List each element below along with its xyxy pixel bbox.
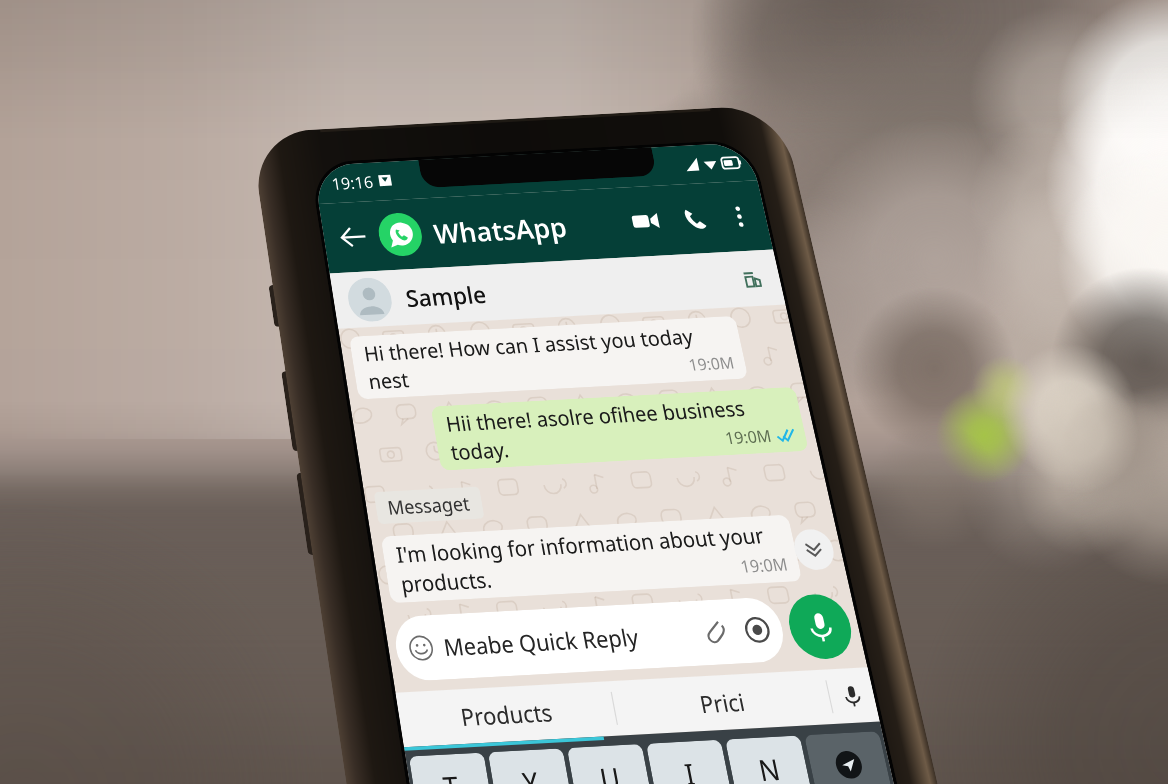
staticText: N: [738, 738, 800, 784]
staticText: 19:0M: [678, 329, 745, 397]
button[interactable]: Video call: [600, 176, 691, 266]
button[interactable]: Business profile: [716, 243, 788, 315]
button[interactable]: More options: [697, 175, 781, 258]
staticText: WhatsApp: [415, 145, 584, 314]
staticText: Prici: [684, 665, 761, 742]
button[interactable]: N: [699, 699, 839, 784]
button[interactable]: [404, 780, 557, 784]
button[interactable]: Back: [310, 194, 397, 280]
button[interactable]: Prici: [587, 568, 857, 784]
staticText: 19:16: [320, 151, 385, 215]
button[interactable]: Products: [371, 580, 641, 784]
button[interactable]: [770, 761, 923, 784]
button[interactable]: U: [540, 708, 679, 784]
button[interactable]: Send: [778, 695, 918, 784]
button[interactable]: [587, 771, 739, 784]
button[interactable]: Contact avatar: [357, 191, 444, 278]
button[interactable]: I: [620, 704, 759, 784]
button[interactable]: Scroll to bottom: [773, 509, 854, 590]
button[interactable]: [679, 766, 831, 784]
button[interactable]: Record voice message: [756, 563, 884, 690]
staticText: Products: [444, 653, 569, 777]
staticText: 19:0M: [714, 402, 783, 471]
button[interactable]: Voice call: [648, 173, 740, 264]
staticText: U: [580, 748, 640, 784]
staticText: I'm looking for information about your p…: [369, 336, 814, 781]
staticText: Hii there! asolre ofihee business today.: [420, 229, 820, 628]
staticText: T: [423, 758, 480, 784]
button[interactable]: [496, 776, 648, 784]
staticText: Sample: [390, 240, 502, 351]
button[interactable]: Sample: [305, 38, 808, 540]
button[interactable]: T: [381, 716, 521, 784]
button[interactable]: Voice input: [802, 646, 902, 745]
staticText: I: [665, 748, 715, 784]
staticText: Y: [502, 754, 559, 784]
button[interactable]: Y: [461, 712, 600, 784]
staticText: 19:0M: [729, 530, 800, 600]
button[interactable]: Meabe Quick Reply: [362, 413, 816, 784]
staticText: Hi there! How can I assist you today nes…: [338, 147, 759, 568]
staticText: Meabe Quick Reply: [428, 529, 654, 755]
staticText: Messaget: [374, 451, 483, 560]
